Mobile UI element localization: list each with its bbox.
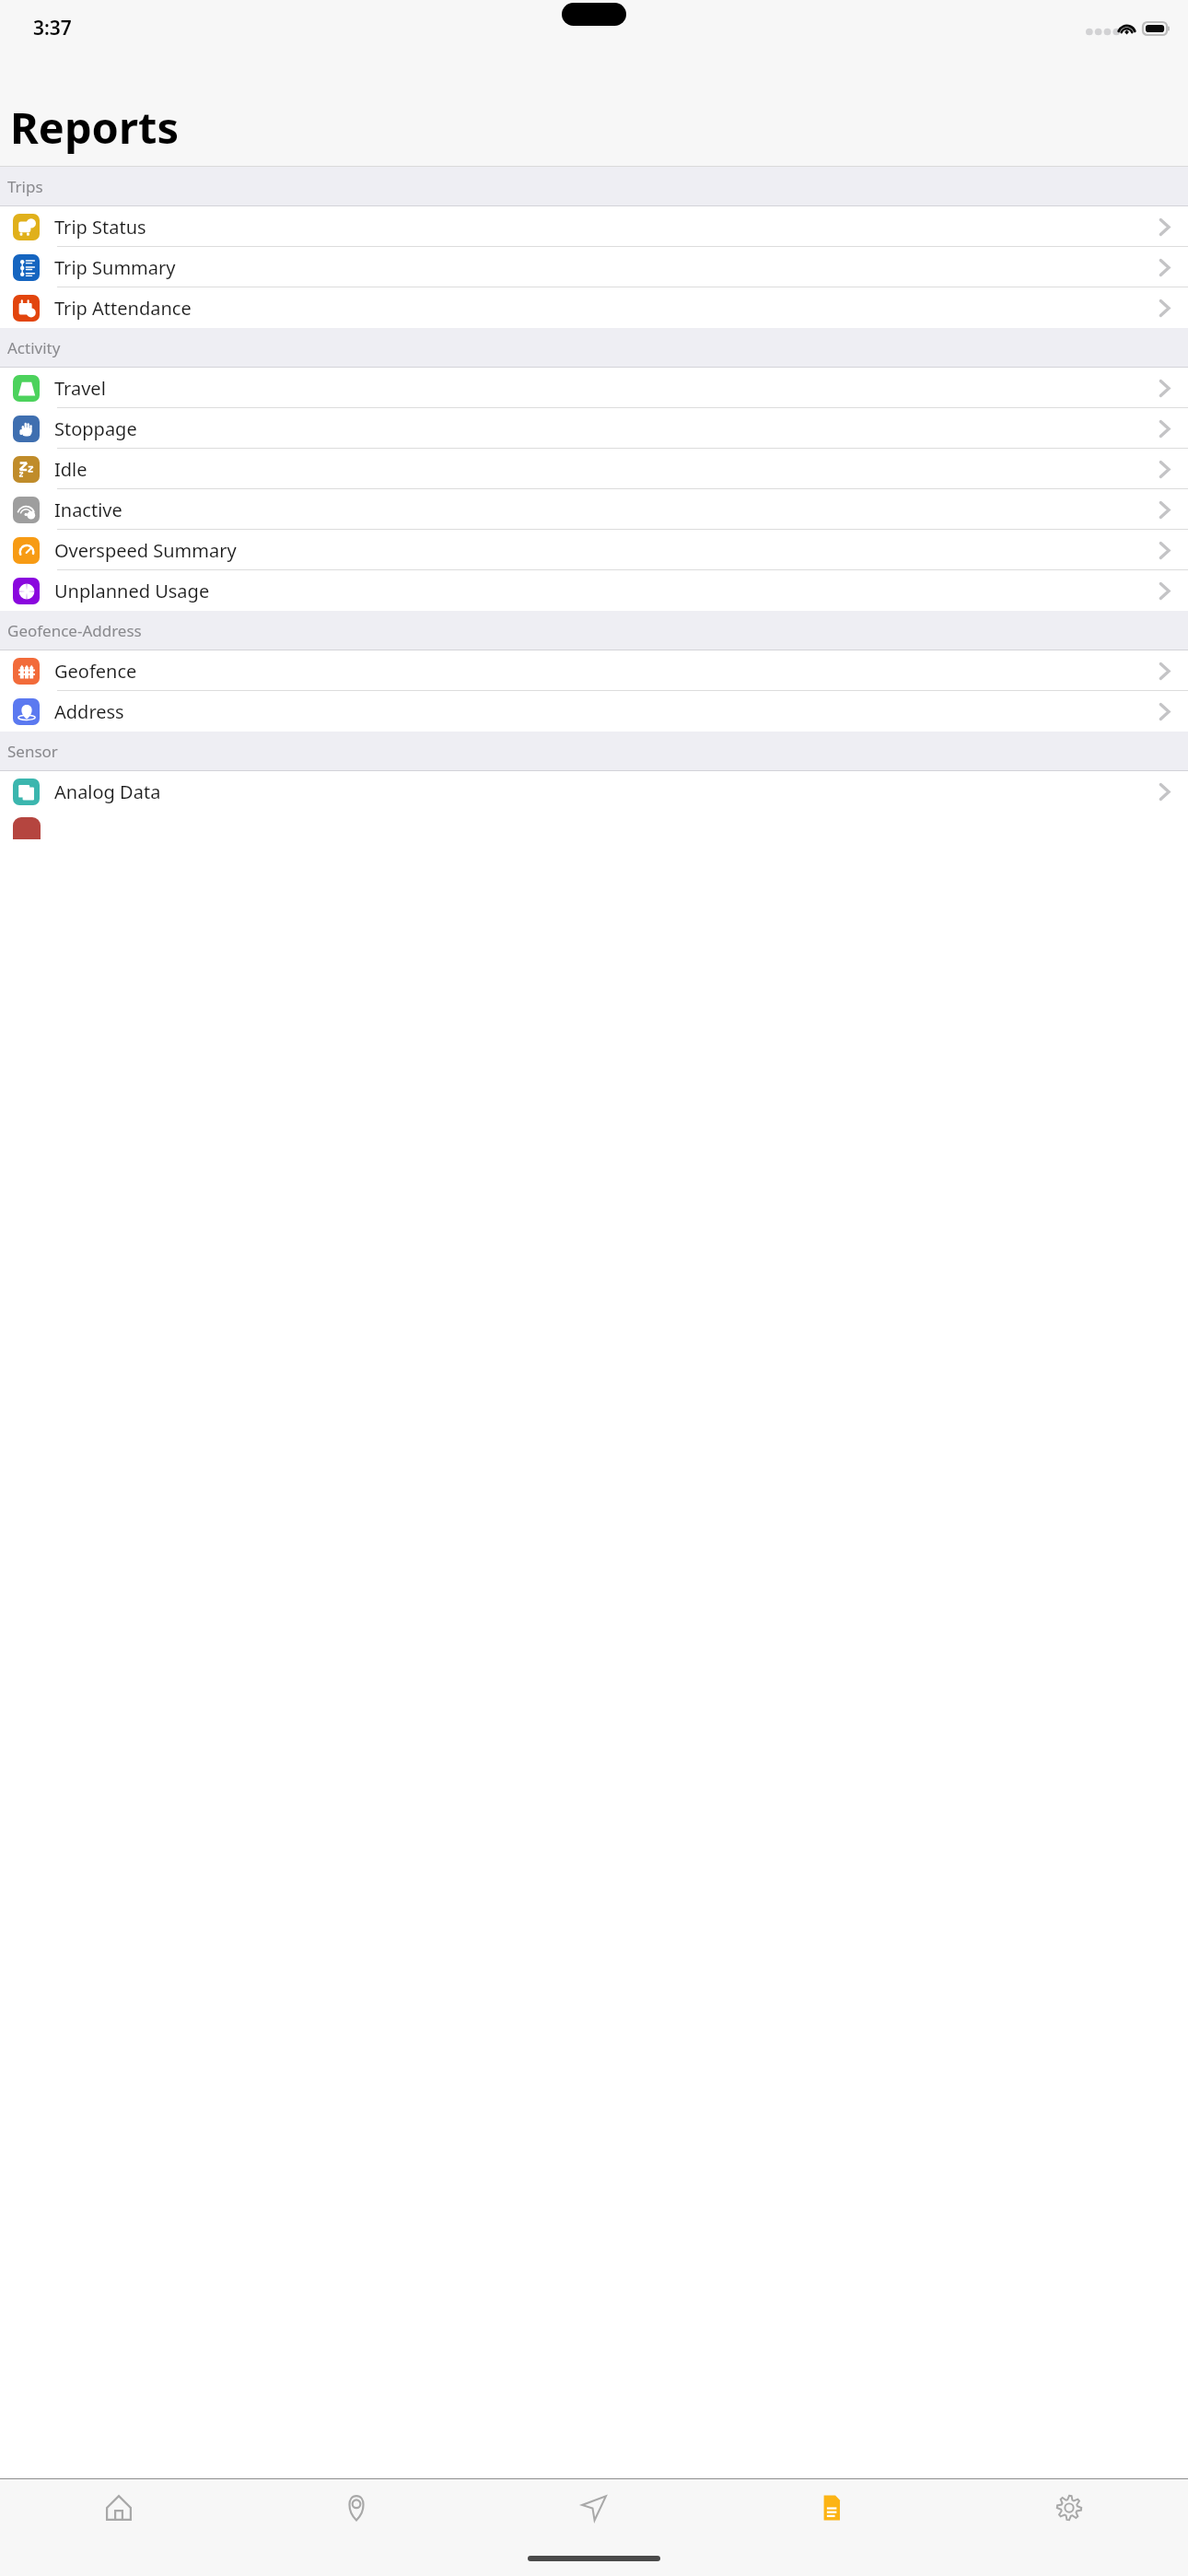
button[interactable]: Idle [0,449,1188,489]
staticText: Activity [7,337,61,358]
button[interactable]: Places [238,2479,475,2536]
button[interactable]: Stoppage [0,408,1188,449]
staticText: Trip Summary [54,255,176,280]
button[interactable]: Reports [713,2479,950,2536]
staticText: Address [54,699,124,724]
button[interactable]: Trip Summary [0,247,1188,287]
staticText: Idle [54,457,87,482]
button[interactable]: Travel [0,368,1188,408]
button[interactable]: Inactive [0,489,1188,530]
staticText: Sensor [7,741,58,762]
button[interactable]: Home [0,2479,238,2536]
staticText: Analog Data [54,779,161,804]
staticText: Reports [10,98,179,157]
staticText: Geofence [54,659,137,684]
staticText: Trip Status [54,215,146,240]
button[interactable]: Trip Attendance [0,287,1188,328]
staticText: Unplanned Usage [54,579,210,603]
button[interactable]: Geofence [0,650,1188,691]
button[interactable]: Overspeed Summary [0,530,1188,570]
staticText: 3:37 [33,15,72,41]
staticText: Geofence-Address [7,620,142,641]
staticText: Trip Attendance [54,296,192,321]
button[interactable]: Unplanned Usage [0,570,1188,611]
button[interactable]: Trip Status [0,206,1188,247]
button[interactable]: Address [0,691,1188,732]
staticText: Inactive [54,498,122,522]
button[interactable]: Analog Data [0,771,1188,812]
button[interactable]: Settings [950,2479,1188,2536]
staticText: Trips [7,176,43,197]
button[interactable]: Navigate [475,2479,713,2536]
staticText: Stoppage [54,416,137,441]
staticText: Overspeed Summary [54,538,237,563]
staticText: Travel [54,376,106,401]
